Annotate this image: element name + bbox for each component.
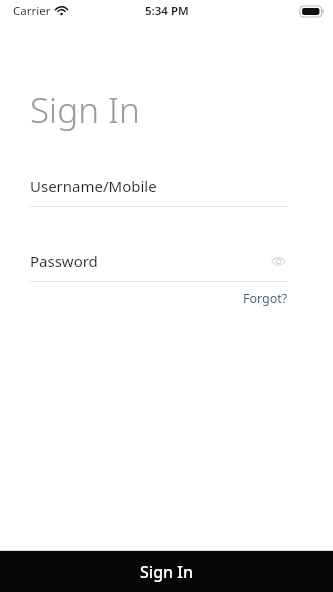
staticText: 5:34 PM [145,3,189,19]
button[interactable]: Show password [268,251,288,271]
staticText: Sign In [140,561,193,583]
button[interactable]: Username/Mobile [30,176,288,196]
staticText: Password [30,251,98,271]
button[interactable]: Sign In [0,551,333,592]
staticText: Forgot? [243,290,288,307]
button[interactable]: Forgot? [240,287,291,310]
staticText: Carrier [13,3,51,19]
staticText: Sign In [30,86,140,134]
staticText: Username/Mobile [30,176,157,196]
button[interactable]: Password [30,251,288,271]
